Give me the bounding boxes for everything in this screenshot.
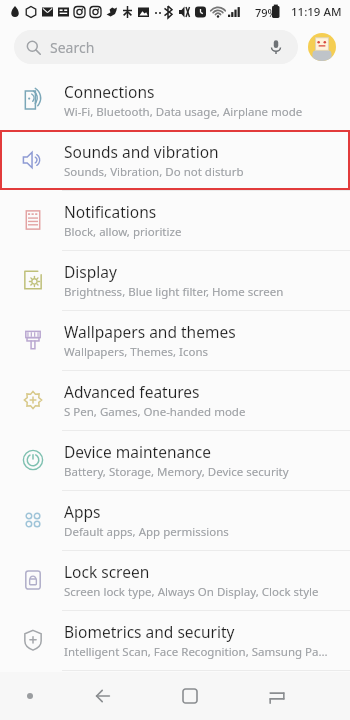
button[interactable]: Advanced features xyxy=(0,370,350,430)
staticText: Intelligent Scan, Face Recognition, Sams… xyxy=(64,644,328,660)
button[interactable]: Sounds and vibration xyxy=(0,130,350,190)
button[interactable]: Connections xyxy=(0,70,350,130)
button[interactable]: Device maintenance xyxy=(0,430,350,490)
button[interactable]: Wallpapers and themes xyxy=(0,310,350,370)
staticText: Sounds and vibration xyxy=(64,141,219,162)
button[interactable]: Back xyxy=(60,672,146,720)
button[interactable]: Recents xyxy=(233,672,320,720)
staticText: 79% xyxy=(255,5,277,20)
staticText: Brightness, Blue light filter, Home scre… xyxy=(64,284,284,300)
staticText: Lock screen xyxy=(64,561,150,582)
button[interactable]: Home xyxy=(146,672,233,720)
button[interactable]: Voice search xyxy=(266,37,286,57)
staticText: S Pen, Games, One-handed mode xyxy=(64,404,246,420)
button[interactable]: Apps xyxy=(0,490,350,550)
staticText: Battery, Storage, Memory, Device securit… xyxy=(64,464,289,480)
staticText: Sounds, Vibration, Do not disturb xyxy=(64,164,244,180)
button[interactable]: Biometrics and security xyxy=(0,610,350,670)
staticText: Wi-Fi, Bluetooth, Data usage, Airplane m… xyxy=(64,104,303,120)
staticText: Device maintenance xyxy=(64,441,211,462)
staticText: Notifications xyxy=(64,201,157,222)
staticText: Display xyxy=(64,261,117,282)
button[interactable]: Lock screen xyxy=(0,550,350,610)
staticText: Apps xyxy=(64,501,101,522)
button[interactable]: Notifications xyxy=(0,190,350,250)
staticText: Wallpapers and themes xyxy=(64,321,236,342)
button[interactable]: Display xyxy=(0,250,350,310)
staticText: Block, allow, prioritize xyxy=(64,224,182,240)
staticText: Screen lock type, Always On Display, Clo… xyxy=(64,584,319,600)
button[interactable]: Profile xyxy=(308,33,336,61)
staticText: Advanced features xyxy=(64,381,200,402)
staticText: Connections xyxy=(64,81,155,102)
staticText: Search xyxy=(50,38,95,57)
staticText: Biometrics and security xyxy=(64,621,235,642)
staticText: 11:19 AM xyxy=(291,4,342,20)
staticText: Default apps, App permissions xyxy=(64,524,229,540)
button[interactable]: Search xyxy=(14,30,298,64)
staticText: Wallpapers, Themes, Icons xyxy=(64,344,209,360)
